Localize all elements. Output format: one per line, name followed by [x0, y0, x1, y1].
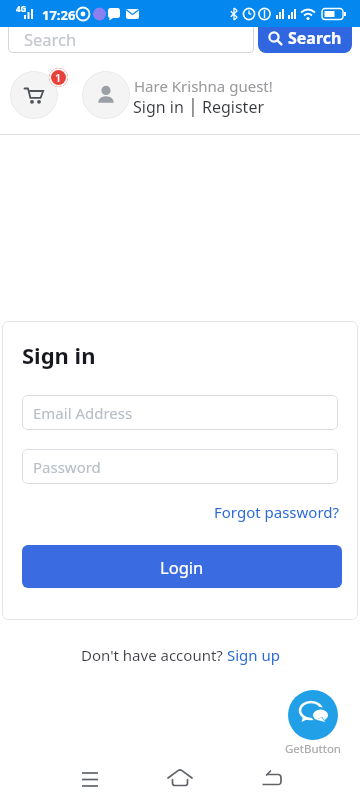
staticText: Sign in	[22, 340, 96, 370]
button[interactable]: Password	[22, 449, 338, 484]
staticText: Search	[24, 28, 77, 50]
button[interactable]: Search	[258, 14, 352, 53]
button[interactable]: Register	[202, 96, 265, 118]
button[interactable]	[288, 690, 338, 740]
button[interactable]: Login	[22, 545, 342, 588]
button[interactable]	[78, 767, 102, 791]
button[interactable]: Forgot password?	[214, 502, 340, 522]
button[interactable]: Sign up	[227, 645, 280, 665]
button[interactable]	[10, 71, 58, 119]
button[interactable]	[168, 766, 192, 790]
staticText: GetButton	[285, 741, 341, 757]
staticText: Search	[288, 27, 342, 49]
staticText: Hare Krishna guest!	[134, 76, 273, 96]
staticText: │	[184, 96, 202, 118]
button[interactable]	[261, 766, 285, 790]
button[interactable]: Email Address	[22, 395, 338, 430]
staticText: Don't have account?	[81, 645, 227, 665]
button[interactable]: Sign in	[133, 96, 184, 118]
button[interactable]	[82, 71, 130, 119]
staticText: 1	[55, 70, 62, 85]
staticText: 17:26	[42, 6, 76, 24]
staticText: Email Address	[33, 403, 133, 423]
staticText: Password	[33, 457, 101, 477]
staticText: 4G	[16, 3, 27, 14]
button[interactable]: Search	[8, 12, 254, 53]
staticText: Login	[160, 556, 204, 578]
